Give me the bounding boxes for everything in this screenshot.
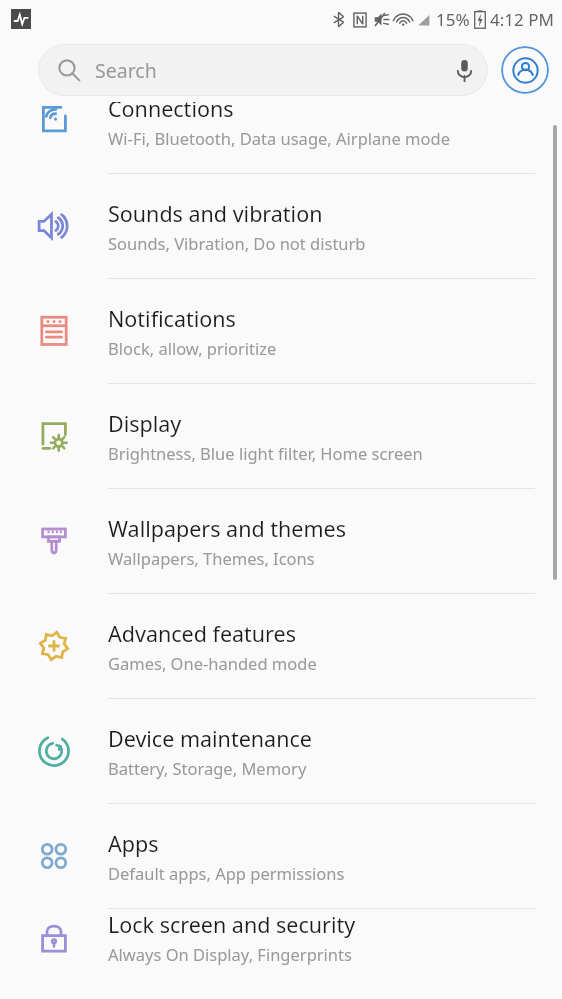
staticText: Search <box>95 57 440 84</box>
button[interactable]: Advanced features <box>0 594 562 698</box>
staticText: Display <box>108 409 182 438</box>
staticText: Battery, Storage, Memory <box>108 757 307 779</box>
staticText: Wallpapers and themes <box>108 514 346 543</box>
staticText: Default apps, App permissions <box>108 862 345 884</box>
button[interactable]: Samsung account <box>501 46 549 94</box>
staticText: Brightness, Blue light filter, Home scre… <box>108 442 423 464</box>
button[interactable]: Apps <box>0 804 562 908</box>
staticText: Apps <box>108 829 159 858</box>
staticText: Games, One-handed mode <box>108 652 317 674</box>
button[interactable]: Notifications <box>0 279 562 383</box>
button[interactable]: Voice search <box>440 46 488 94</box>
staticText: Wi-Fi, Bluetooth, Data usage, Airplane m… <box>108 127 450 149</box>
button[interactable]: Connections <box>0 102 562 173</box>
staticText: Connections <box>108 102 234 123</box>
staticText: 4:12 PM <box>490 8 554 31</box>
staticText: Block, allow, prioritize <box>108 337 277 359</box>
staticText: Sounds, Vibration, Do not disturb <box>108 232 366 254</box>
staticText: 15% <box>436 8 470 31</box>
staticText: Advanced features <box>108 619 296 648</box>
staticText: Sounds and vibration <box>108 199 323 228</box>
staticText: Wallpapers, Themes, Icons <box>108 547 315 569</box>
button[interactable]: Lock screen and security <box>0 909 562 966</box>
staticText: Notifications <box>108 304 236 333</box>
staticText: Lock screen and security <box>108 910 356 939</box>
button[interactable]: Sounds and vibration <box>0 174 562 278</box>
button[interactable]: Search <box>38 44 488 96</box>
staticText: Device maintenance <box>108 724 312 753</box>
button[interactable]: Display <box>0 384 562 488</box>
button[interactable]: Device maintenance <box>0 699 562 803</box>
staticText: Always On Display, Fingerprints <box>108 943 352 965</box>
button[interactable]: Wallpapers and themes <box>0 489 562 593</box>
